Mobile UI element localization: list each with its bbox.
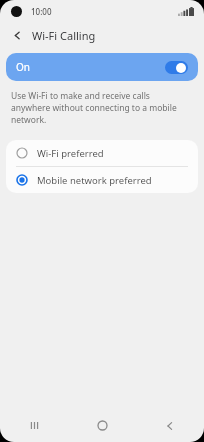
staticText: Mobile network preferred (37, 174, 152, 187)
staticText: On (16, 60, 30, 74)
button[interactable]: Back (136, 409, 204, 442)
staticText: 10:00 (31, 6, 52, 17)
staticText: Wi-Fi preferred (37, 147, 104, 160)
button[interactable]: Home (68, 409, 136, 442)
button[interactable]: Wi-Fi preferred (6, 140, 198, 166)
staticText: Use Wi-Fi to make and receive calls anyw… (11, 90, 188, 126)
button[interactable]: Back (6, 24, 28, 46)
button[interactable]: Recents (0, 409, 68, 442)
button[interactable]: Mobile network preferred (6, 167, 198, 193)
button[interactable]: On (6, 53, 198, 81)
staticText: Wi-Fi Calling (32, 28, 96, 43)
